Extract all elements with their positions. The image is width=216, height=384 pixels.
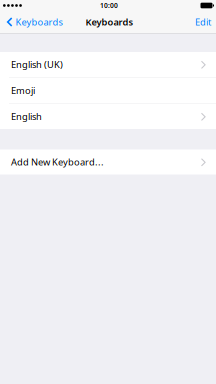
staticText: Keyboards (85, 16, 133, 28)
button[interactable]: Add New Keyboard... (0, 149, 216, 174)
button[interactable]: Keyboards (0, 11, 66, 33)
button[interactable]: Edit (190, 11, 216, 33)
button[interactable]: Emoji (0, 78, 216, 103)
staticText: 10:00 (100, 1, 118, 10)
staticText: English (UK) (11, 58, 63, 71)
staticText: Emoji (11, 84, 35, 97)
button[interactable]: English (UK) (0, 52, 216, 77)
staticText: Add New Keyboard... (11, 156, 104, 168)
staticText: Keyboards (15, 16, 62, 28)
staticText: Edit (195, 16, 211, 28)
button[interactable]: English (0, 104, 216, 129)
staticText: English (11, 110, 42, 123)
